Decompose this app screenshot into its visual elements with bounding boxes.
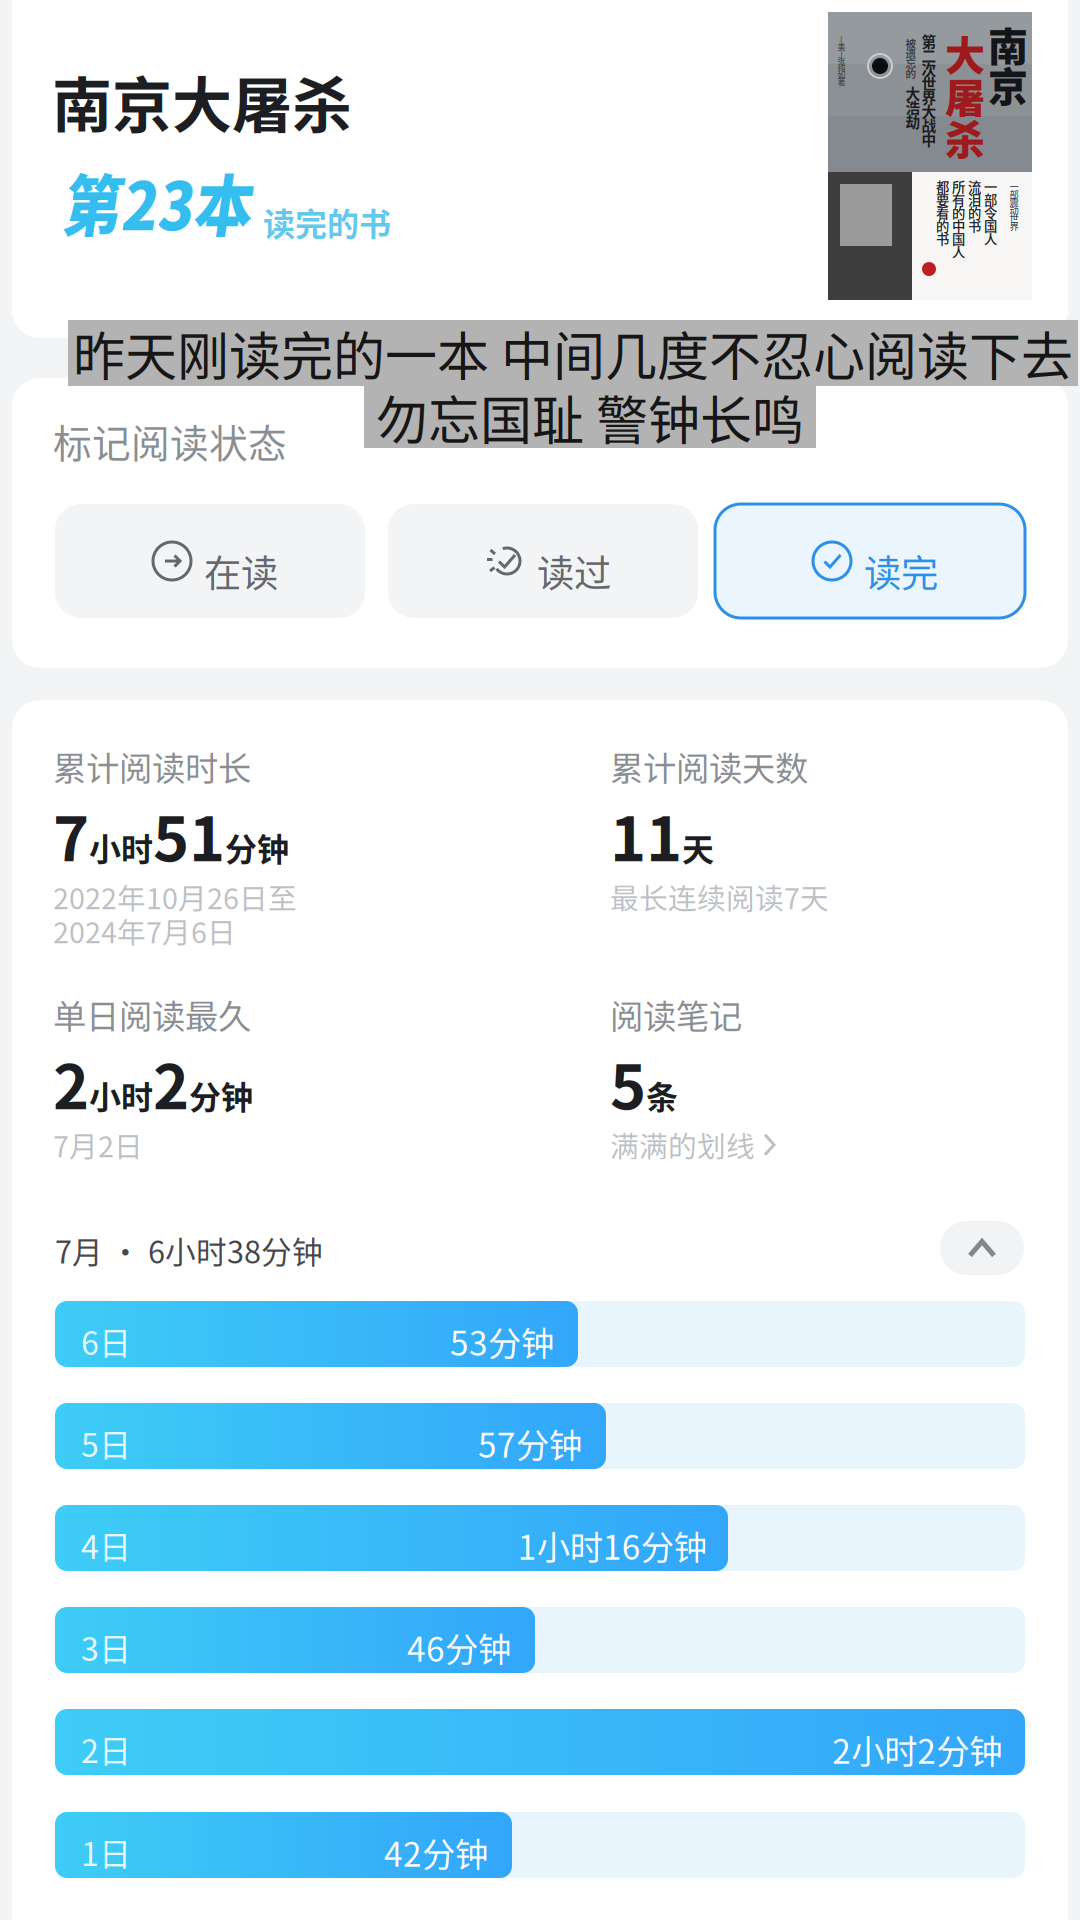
staticText: 震: [1009, 195, 1018, 209]
staticText: 累计阅读时长: [53, 742, 251, 790]
staticText: 天: [682, 824, 714, 870]
staticText: 世: [921, 72, 936, 94]
staticText: 6日: [81, 1318, 131, 1364]
staticText: 1小时16分钟: [518, 1521, 707, 1569]
staticText: 泪: [968, 190, 981, 209]
staticText: 满满的划线: [610, 1124, 755, 1165]
staticText: 战: [921, 114, 936, 136]
staticText: 7月 · 6小时38分钟: [55, 1228, 323, 1272]
staticText: 劫: [905, 110, 920, 132]
staticText: 中: [952, 216, 965, 235]
staticText: 标记阅读状态: [53, 413, 287, 469]
staticText: 在读: [204, 544, 278, 598]
staticText: ]: [840, 48, 843, 59]
staticText: 单日阅读最久: [53, 990, 251, 1038]
staticText: 人: [984, 229, 997, 248]
staticText: 7: [53, 790, 89, 879]
staticText: 昨天刚读完的一本 中间几度不忍心阅读下去: [73, 315, 1073, 391]
staticText: 2: [153, 1038, 189, 1127]
staticText: 一: [984, 177, 997, 196]
staticText: 如: [837, 69, 845, 80]
staticText: 美: [837, 41, 845, 52]
staticText: 书: [936, 229, 949, 248]
button[interactable]: 收起: [940, 1221, 1024, 1275]
staticText: 阅读笔记: [610, 990, 742, 1038]
staticText: 界: [1009, 219, 1018, 233]
staticText: 第23本: [60, 154, 250, 239]
staticText: 分钟: [225, 824, 289, 870]
staticText: 1日: [81, 1829, 131, 1875]
staticText: 2024年7月6日: [53, 910, 236, 951]
staticText: 读完: [864, 544, 938, 598]
staticText: 2日: [81, 1726, 131, 1772]
staticText: 被: [905, 35, 916, 51]
staticText: 京: [988, 55, 1028, 113]
staticText: 都: [936, 177, 949, 196]
staticText: 要: [936, 190, 949, 209]
staticText: 国: [952, 229, 965, 248]
staticText: 南: [988, 15, 1028, 73]
staticText: 的: [968, 203, 981, 222]
staticText: 大: [905, 82, 920, 104]
staticText: 著: [837, 76, 845, 87]
staticText: 读完的书: [263, 199, 391, 245]
staticText: 杀: [945, 108, 985, 166]
staticText: 5日: [81, 1420, 131, 1466]
staticText: 次: [921, 58, 936, 80]
staticText: 大: [921, 100, 936, 122]
staticText: 53分钟: [450, 1317, 554, 1365]
staticText: 勿忘国耻 警钟长鸣: [376, 379, 804, 455]
staticText: 4日: [81, 1522, 131, 1568]
staticText: 浩: [905, 96, 920, 118]
button[interactable]: 读过: [388, 504, 698, 618]
staticText: 二: [921, 44, 936, 66]
staticText: 2小时2分钟: [832, 1725, 1002, 1773]
staticText: 最长连续阅读7天: [610, 876, 829, 917]
staticText: 2: [53, 1038, 89, 1127]
staticText: 小时: [89, 1072, 153, 1118]
button[interactable]: 在读: [55, 504, 365, 618]
staticText: 的: [936, 216, 949, 235]
staticText: 小时: [89, 824, 153, 870]
staticText: 5: [610, 1038, 646, 1127]
staticText: 42分钟: [384, 1828, 488, 1876]
staticText: 遗: [905, 45, 916, 61]
staticText: 条: [646, 1072, 678, 1118]
staticText: 7月2日: [53, 1124, 143, 1165]
staticText: 国: [984, 216, 997, 235]
staticText: 部: [984, 190, 997, 209]
staticText: 南京大屠杀: [52, 58, 352, 145]
staticText: 2022年10月26日至: [53, 876, 297, 917]
staticText: 的: [952, 203, 965, 222]
staticText: 的: [905, 65, 916, 81]
staticText: 流: [968, 177, 981, 196]
staticText: 张: [837, 55, 845, 66]
staticText: 51: [153, 790, 225, 879]
staticText: 界: [921, 86, 936, 108]
staticText: 忘: [905, 55, 916, 71]
button[interactable]: 读完: [715, 504, 1025, 618]
staticText: 大: [945, 24, 985, 82]
staticText: 57分钟: [478, 1419, 582, 1467]
staticText: 所: [952, 177, 965, 196]
staticText: 有: [952, 190, 965, 209]
staticText: 书: [968, 216, 981, 235]
staticText: 屠: [945, 66, 985, 124]
staticText: 一: [1009, 179, 1018, 193]
staticText: 读过: [537, 544, 611, 598]
staticText: 看: [936, 203, 949, 222]
staticText: 46分钟: [407, 1623, 511, 1671]
staticText: 11: [610, 790, 682, 879]
staticText: 令: [984, 203, 997, 222]
staticText: 累计阅读天数: [610, 742, 808, 790]
staticText: 人: [952, 242, 965, 261]
staticText: 分钟: [189, 1072, 253, 1118]
staticText: 动: [1009, 203, 1018, 217]
staticText: 纯: [837, 62, 845, 73]
staticText: 3日: [81, 1624, 131, 1670]
staticText: 第: [921, 30, 936, 52]
staticText: [: [840, 34, 843, 45]
staticText: 中: [921, 128, 936, 150]
staticText: 部: [1009, 187, 1018, 201]
staticText: 世: [1009, 211, 1018, 225]
